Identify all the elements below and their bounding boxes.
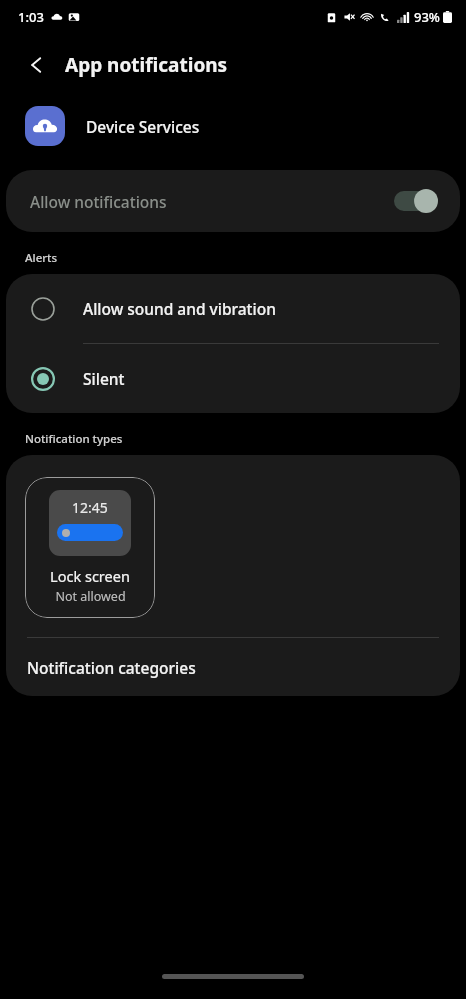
- staticText: Silent: [83, 368, 125, 389]
- button[interactable]: Allow notifications: [6, 170, 460, 232]
- staticText: Lock screen: [50, 566, 130, 586]
- button[interactable]: Device Services: [0, 96, 466, 156]
- staticText: Notification categories: [27, 657, 196, 678]
- button[interactable]: Silent: [6, 344, 460, 413]
- button[interactable]: Notification categories: [6, 638, 460, 696]
- staticText: 1:03: [18, 8, 44, 26]
- staticText: 93%: [414, 8, 440, 26]
- staticText: App notifications: [65, 52, 228, 78]
- staticText: Allow notifications: [30, 191, 394, 212]
- staticText: Not allowed: [55, 588, 126, 605]
- staticText: Allow sound and vibration: [83, 298, 276, 319]
- staticText: 12:45: [72, 498, 108, 517]
- staticText: Notification types: [25, 431, 123, 447]
- button[interactable]: Allow sound and vibration: [6, 274, 460, 343]
- button[interactable]: 12:45: [25, 477, 155, 618]
- button[interactable]: Back: [14, 42, 60, 88]
- staticText: Device Services: [86, 116, 200, 137]
- staticText: Alerts: [25, 250, 58, 266]
